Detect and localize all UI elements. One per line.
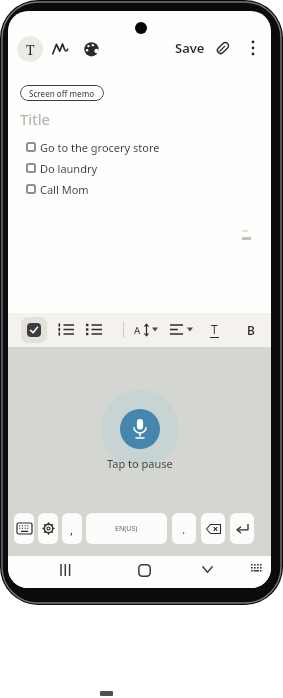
button[interactable] [251, 564, 262, 574]
button[interactable] [86, 323, 102, 336]
staticText: T [26, 40, 35, 59]
staticText: Tap to pause [107, 456, 173, 471]
button[interactable] [14, 513, 34, 544]
staticText: Go to the grocery store [40, 140, 160, 155]
button[interactable] [132, 317, 160, 343]
button[interactable]: Screen off memo [20, 85, 104, 101]
button[interactable] [138, 564, 151, 577]
button[interactable] [120, 409, 160, 449]
staticText: Do laundry [40, 161, 98, 176]
button[interactable]: Save [171, 39, 208, 57]
button[interactable]: EN(US) [86, 513, 167, 544]
button[interactable]: Call Mom [20, 182, 220, 197]
button[interactable] [83, 41, 100, 57]
staticText: A [134, 324, 141, 337]
button[interactable]: Do laundry [20, 161, 220, 176]
button[interactable] [52, 41, 68, 56]
button[interactable]: T [17, 36, 43, 62]
button[interactable]: B [242, 317, 259, 343]
staticText: B [247, 322, 255, 338]
staticText: . [182, 521, 186, 537]
button[interactable] [248, 39, 258, 57]
button[interactable] [215, 40, 231, 56]
button[interactable] [58, 323, 74, 336]
staticText: Title [20, 109, 50, 129]
staticText: Screen off memo [29, 88, 95, 99]
staticText: , [70, 521, 74, 537]
button[interactable]: T [206, 317, 223, 341]
button[interactable] [38, 513, 58, 544]
staticText: Call Mom [40, 182, 89, 197]
staticText: T [211, 321, 218, 337]
staticText: Save [175, 39, 205, 57]
button[interactable]: . [172, 513, 196, 544]
button[interactable]: , [62, 513, 82, 544]
button[interactable]: Go to the grocery store [20, 140, 220, 155]
button[interactable] [201, 513, 225, 544]
button[interactable] [21, 317, 47, 343]
button[interactable] [60, 564, 71, 576]
button[interactable] [202, 566, 213, 573]
button[interactable] [230, 513, 254, 544]
staticText: EN(US) [115, 524, 138, 534]
button[interactable] [168, 317, 196, 343]
